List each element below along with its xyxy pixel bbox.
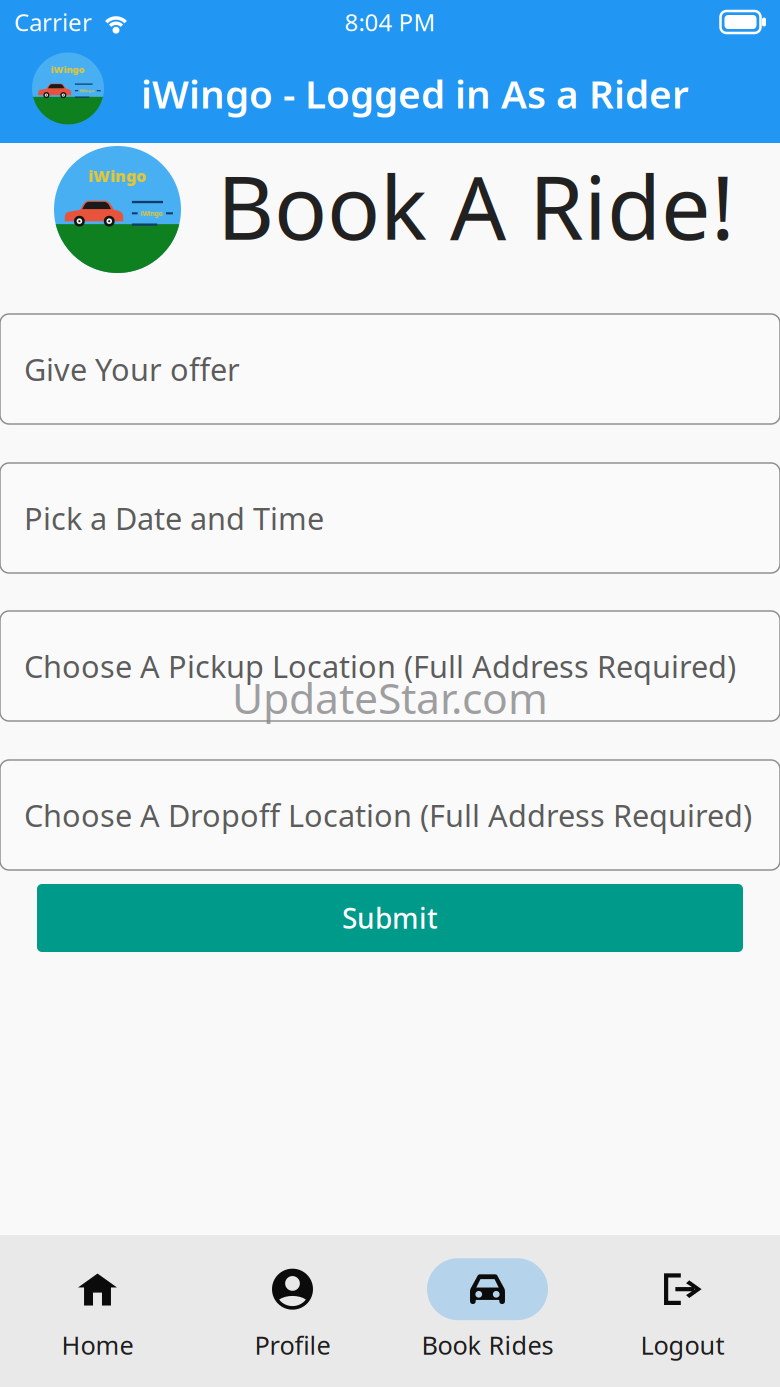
staticText: iWingo [51,63,85,76]
staticText: iWingo [80,88,95,93]
button[interactable]: Give Your offer [0,314,780,424]
staticText: Give Your offer [24,349,240,389]
staticText: Choose A Pickup Location (Full Address R… [24,646,736,686]
staticText: UpdateStar.com [232,669,548,726]
staticText: Logout [640,1328,724,1362]
staticText: Book A Ride! [217,147,735,264]
button[interactable]: Pick a Date and Time [0,463,780,573]
button[interactable]: Profile [195,1252,390,1370]
button[interactable]: Home [0,1252,195,1370]
staticText: Carrier [14,6,92,38]
button[interactable]: Submit [37,884,743,952]
staticText: Profile [254,1328,330,1362]
button[interactable]: Logout [585,1252,780,1370]
button[interactable]: Book Rides [390,1252,585,1370]
staticText: Submit [342,899,438,937]
staticText: 8:04 PM [344,6,435,38]
button[interactable]: Choose A Dropoff Location (Full Address … [0,760,780,870]
staticText: Book Rides [421,1328,553,1362]
staticText: Home [61,1328,133,1362]
staticText: Pick a Date and Time [24,498,324,538]
staticText: Choose A Dropoff Location (Full Address … [24,795,752,835]
staticText: iWingo [141,209,163,218]
button[interactable]: Choose A Pickup Location (Full Address R… [0,611,780,721]
staticText: iWingo - Logged in As a Rider [141,68,689,119]
staticText: iWingo [88,165,146,186]
